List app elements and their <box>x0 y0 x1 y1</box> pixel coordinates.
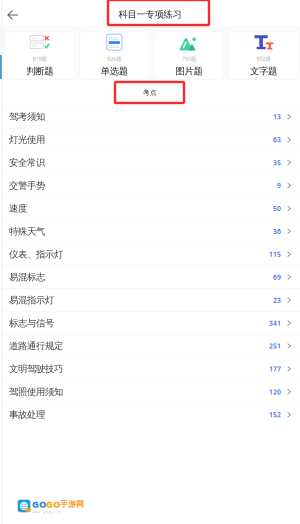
staticText: 单选题 <box>101 65 128 77</box>
staticText: 驾照使用须知 <box>9 386 63 398</box>
button[interactable]: 特殊天气 <box>0 220 300 242</box>
staticText: 177 <box>269 364 281 373</box>
staticText: 标志与信号 <box>9 317 54 329</box>
staticText: 36 <box>273 227 281 236</box>
staticText: 文字题 <box>250 65 277 77</box>
button[interactable]: 952题 <box>229 31 298 79</box>
button[interactable]: 驾照使用须知 <box>0 381 300 403</box>
staticText: 13 <box>273 112 281 121</box>
button[interactable]: 标志与信号 <box>0 312 300 334</box>
button[interactable]: 819题 <box>5 31 75 79</box>
button[interactable]: 速度 <box>0 197 300 220</box>
staticText: 9 <box>277 181 281 190</box>
staticText: 事故处理 <box>9 409 45 420</box>
staticText: 50 <box>273 204 281 213</box>
staticText: 152 <box>269 410 281 419</box>
staticText: 易混指示灯 <box>9 294 54 306</box>
staticText: 69 <box>273 273 281 282</box>
staticText: 道路通行规定 <box>9 340 63 352</box>
staticText: 63 <box>273 135 281 144</box>
staticText: 交警手势 <box>9 180 45 191</box>
button[interactable]: 仪表、指示灯 <box>0 243 300 265</box>
button[interactable]: 交警手势 <box>0 174 300 197</box>
button[interactable]: Back <box>0 0 26 28</box>
staticText: 120 <box>269 387 281 396</box>
staticText: 安全常识 <box>9 157 45 168</box>
staticText: 图片题 <box>175 65 202 77</box>
staticText: 819题 <box>33 55 47 62</box>
staticText: 251 <box>269 341 281 350</box>
staticText: 仪表、指示灯 <box>9 248 63 260</box>
staticText: 952题 <box>256 55 270 62</box>
staticText: 驾考须知 <box>9 111 45 122</box>
staticText: 灯光使用 <box>9 134 45 145</box>
staticText: 35 <box>273 158 281 167</box>
staticText: 科目一专项练习 <box>118 9 181 20</box>
staticText: 23 <box>273 296 281 305</box>
staticText: 特殊天气 <box>9 226 45 237</box>
button[interactable]: 道路通行规定 <box>0 335 300 357</box>
staticText: 考点 <box>143 88 157 97</box>
staticText: 926题 <box>107 55 121 62</box>
button[interactable]: 事故处理 <box>0 404 300 426</box>
staticText: 易混标志 <box>9 271 45 283</box>
button[interactable]: 驾考须知 <box>0 106 300 128</box>
staticText: 速度 <box>9 203 27 214</box>
staticText: 判断题 <box>26 65 53 77</box>
button[interactable]: 安全常识 <box>0 151 300 174</box>
staticText: 115 <box>269 250 281 259</box>
button[interactable]: 793题 <box>154 31 224 79</box>
button[interactable]: 926题 <box>79 31 149 79</box>
button[interactable]: 易混指示灯 <box>0 289 300 311</box>
staticText: 文明驾驶技巧 <box>9 363 63 375</box>
staticText: w w w . g o g o . c n <box>32 510 61 514</box>
staticText: 793题 <box>182 55 196 62</box>
staticText: 手游网 <box>60 499 84 509</box>
button[interactable]: 易混标志 <box>0 266 300 288</box>
staticText: 341 <box>269 319 281 327</box>
staticText: GO <box>46 498 60 510</box>
button[interactable]: 灯光使用 <box>0 128 300 151</box>
staticText: GO <box>32 498 46 510</box>
button[interactable]: 文明驾驶技巧 <box>0 358 300 380</box>
